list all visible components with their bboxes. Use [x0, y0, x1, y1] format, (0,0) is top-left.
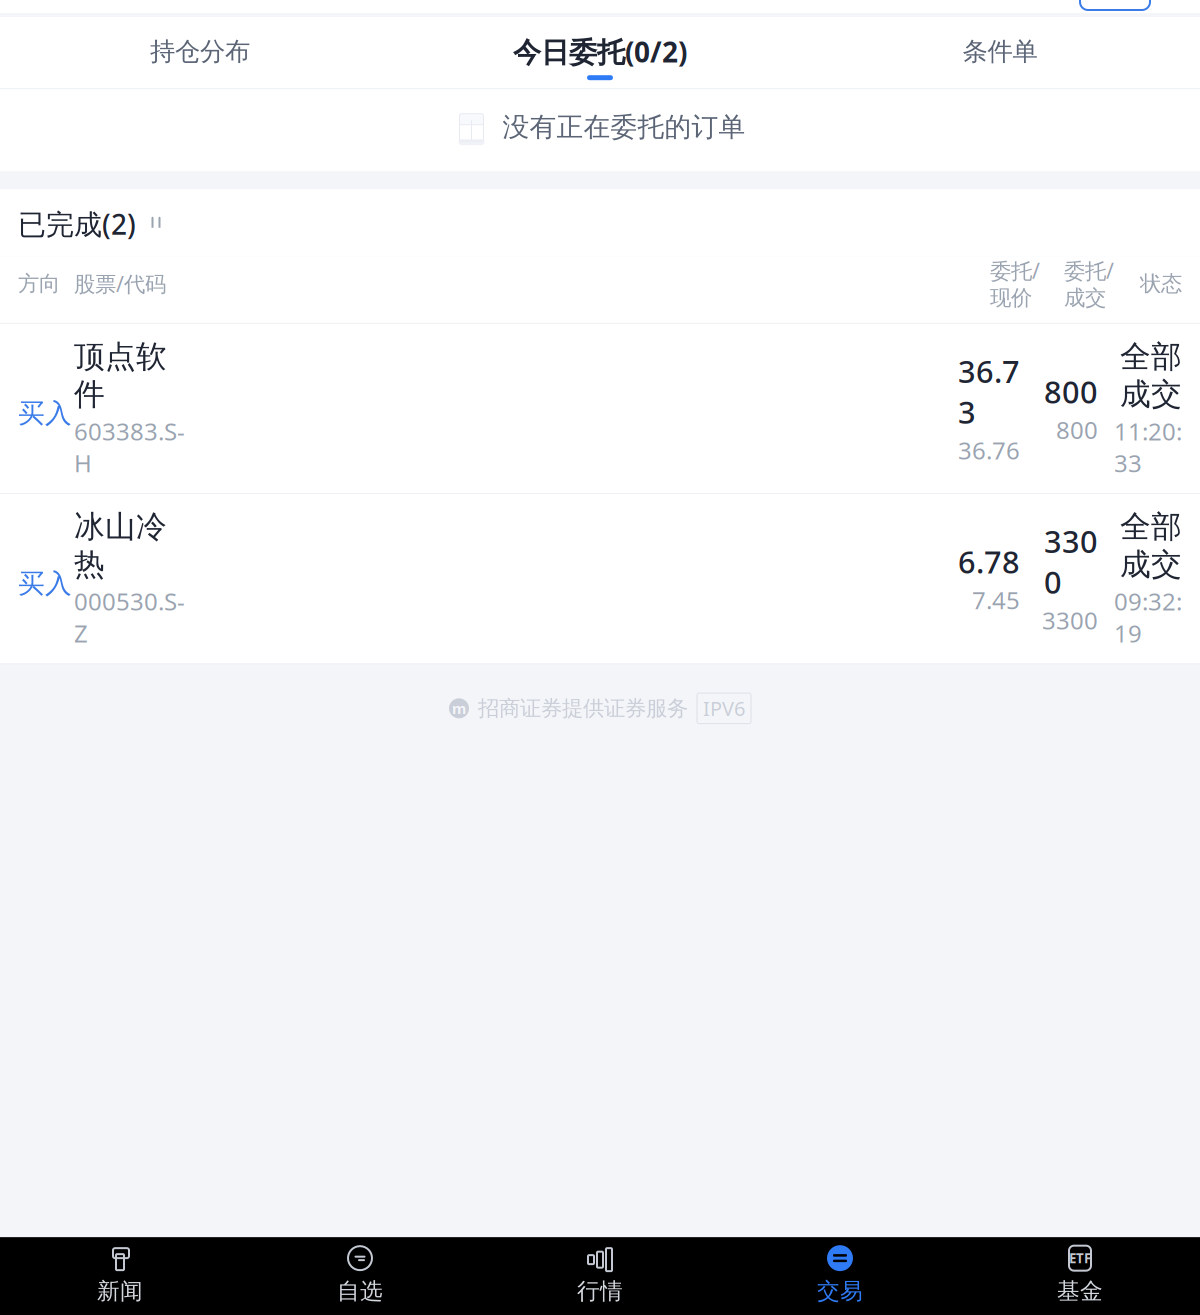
staticText: 条件单 [962, 36, 1037, 67]
staticText: 全部成交 [1120, 508, 1182, 583]
staticText: 11:20:33 [1114, 415, 1182, 479]
button[interactable]: 交易 [720, 1237, 960, 1315]
button[interactable]: ETF [960, 1237, 1200, 1315]
staticText: 603383.SH [74, 415, 185, 479]
staticText: 36.76 [958, 434, 1020, 466]
button[interactable]: 已完成(2) [0, 189, 1200, 256]
staticText: 状态 [1140, 270, 1182, 297]
staticText: 自选 [337, 1277, 383, 1305]
staticText: 持仓分布 [150, 36, 250, 67]
button[interactable]: 自选 [240, 1237, 480, 1315]
staticText: 股票/代码 [74, 269, 166, 298]
staticText: 7.45 [972, 584, 1020, 616]
staticText: 没有正在委托的订单 [502, 111, 745, 144]
staticText: 6.78 [958, 541, 1020, 582]
staticText: 已完成(2) [18, 205, 136, 242]
staticText: 800 [1056, 414, 1098, 446]
staticText: 36.73 [958, 351, 1020, 432]
button[interactable]: 条件单 [800, 20, 1200, 85]
staticText: 委托/成交 [1064, 256, 1114, 311]
staticText: 800 [1044, 371, 1098, 412]
staticText: 方向 [18, 270, 60, 297]
staticText: 3300 [1044, 521, 1098, 602]
staticText: ETF [1069, 1249, 1091, 1267]
button[interactable]: 持仓分布 [0, 20, 400, 85]
staticText: 全部成交 [1120, 338, 1182, 413]
staticText: m [452, 699, 466, 718]
button[interactable]: 买入 [0, 494, 1200, 663]
staticText: 顶点软件 [74, 338, 167, 413]
button[interactable]: 买入 [0, 324, 1200, 493]
staticText: 000530.SZ [74, 585, 185, 649]
staticText: 行情 [577, 1277, 623, 1305]
button[interactable]: 今日委托(0/2) [400, 17, 800, 88]
button[interactable]: 行情 [480, 1237, 720, 1315]
button[interactable]: 新闻 [0, 1237, 240, 1315]
staticText: 今日委托(0/2) [513, 33, 687, 70]
staticText: 招商证券提供证券服务 [478, 695, 688, 721]
staticText: 交易 [817, 1277, 863, 1305]
staticText: 09:32:19 [1114, 585, 1182, 649]
button[interactable]: 操作 [1080, 0, 1150, 21]
staticText: 3300 [1042, 604, 1098, 636]
staticText: 买入 [18, 397, 72, 430]
staticText: 基金 [1057, 1277, 1103, 1305]
staticText: 冰山冷热 [74, 508, 167, 583]
staticText: IPV6 [703, 695, 745, 722]
staticText: 新闻 [97, 1277, 143, 1305]
staticText: 委托/现价 [990, 256, 1040, 311]
staticText: 买入 [18, 567, 72, 600]
